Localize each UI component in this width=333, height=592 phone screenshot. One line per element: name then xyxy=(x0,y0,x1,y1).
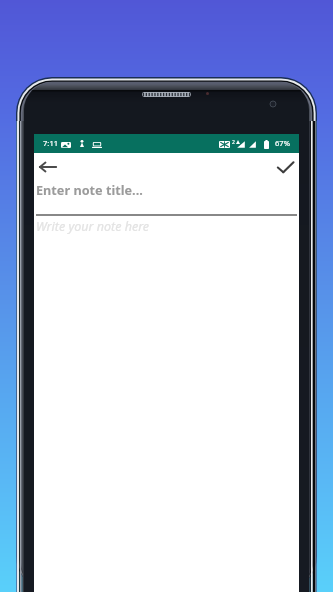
staticText: 67% xyxy=(275,138,290,148)
staticText: Enter note title... xyxy=(36,181,143,198)
staticText: 2 xyxy=(232,139,235,146)
staticText: 7:11 xyxy=(43,138,59,148)
button[interactable]: Back xyxy=(36,155,60,179)
button[interactable]: Save note xyxy=(273,155,297,179)
staticText: Write your note here xyxy=(36,218,150,235)
